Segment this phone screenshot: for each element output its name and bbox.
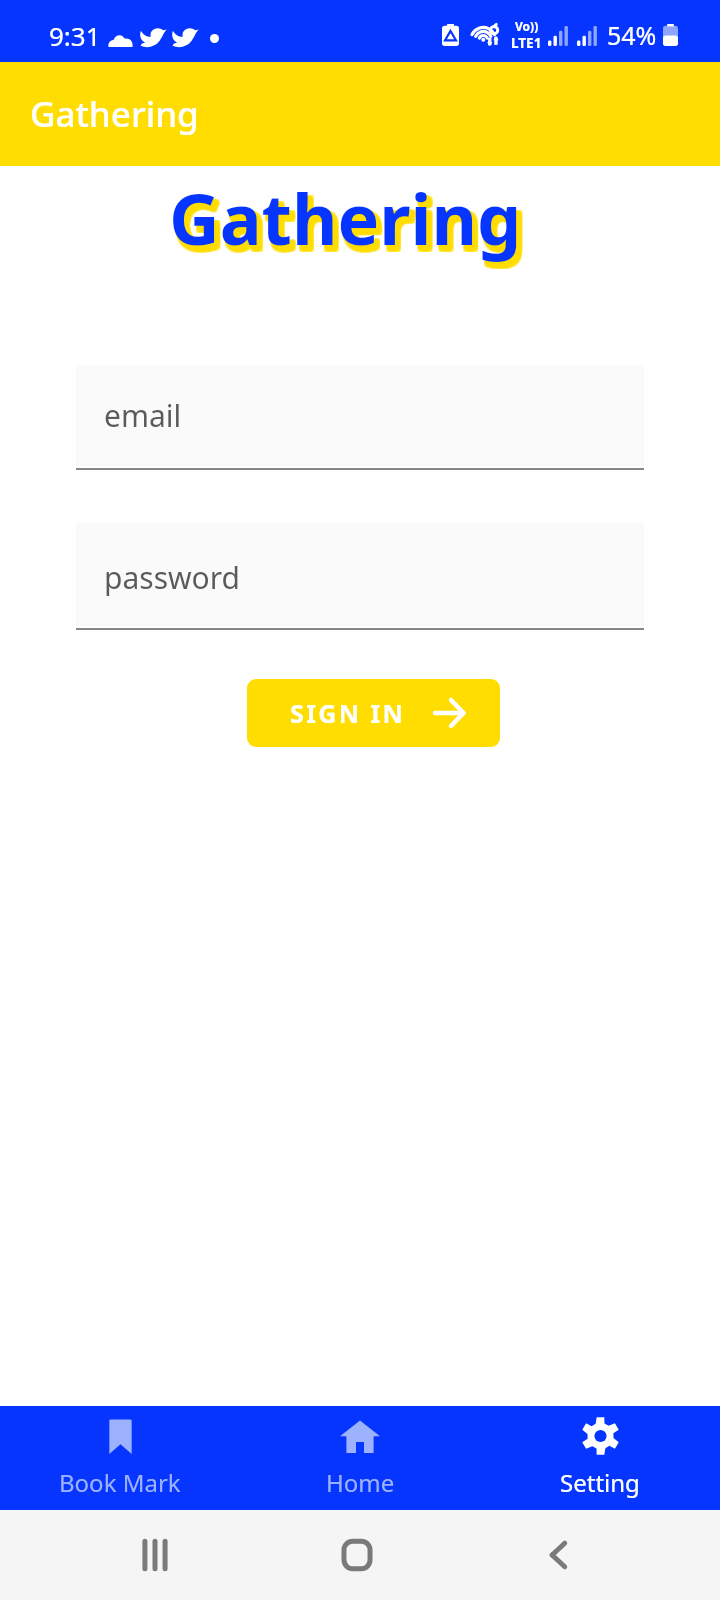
- staticText: Gathering: [171, 175, 524, 270]
- staticText: Gathering: [172, 175, 525, 270]
- staticText: Gathering: [171, 173, 524, 268]
- staticText: 54%: [607, 18, 657, 52]
- staticText: Gathering: [174, 177, 527, 272]
- button[interactable]: Book Mark: [0, 1406, 240, 1510]
- staticText: Gathering: [171, 177, 524, 272]
- button[interactable]: Back: [537, 1534, 579, 1576]
- staticText: Gathering: [172, 177, 525, 272]
- staticText: Gathering: [173, 175, 526, 270]
- staticText: Gathering: [171, 174, 524, 269]
- button[interactable]: Home: [240, 1406, 480, 1510]
- staticText: 9:31: [49, 18, 101, 53]
- staticText: Gathering: [175, 176, 528, 271]
- staticText: Gathering: [171, 176, 524, 271]
- button[interactable]: email: [76, 366, 644, 470]
- staticText: SIGN IN: [290, 696, 406, 730]
- staticText: Gathering: [172, 174, 525, 269]
- staticText: Gathering: [174, 176, 527, 271]
- staticText: Gathering: [173, 175, 526, 270]
- button[interactable]: Recent apps: [134, 1534, 176, 1576]
- staticText: Gathering: [175, 173, 528, 268]
- staticText: Gathering: [173, 174, 526, 269]
- staticText: Gathering: [173, 176, 526, 271]
- staticText: Home: [326, 1466, 395, 1499]
- staticText: Gathering: [174, 175, 527, 270]
- staticText: Setting: [560, 1466, 640, 1499]
- staticText: Gathering: [172, 176, 525, 271]
- staticText: LTE1: [511, 34, 542, 52]
- staticText: Gathering: [174, 173, 527, 268]
- button[interactable]: Setting: [480, 1406, 720, 1510]
- staticText: Gathering: [172, 173, 525, 268]
- staticText: password: [104, 557, 240, 598]
- staticText: Gathering: [175, 174, 528, 269]
- button[interactable]: password: [76, 522, 644, 630]
- staticText: Gathering: [173, 173, 526, 268]
- staticText: Gathering: [174, 174, 527, 269]
- staticText: Gathering: [175, 177, 528, 272]
- staticText: Gathering: [169, 170, 522, 265]
- staticText: Gathering: [173, 177, 526, 272]
- staticText: Gathering: [30, 90, 199, 138]
- staticText: email: [104, 395, 182, 436]
- staticText: Book Mark: [59, 1466, 181, 1499]
- staticText: Vo)): [515, 18, 539, 34]
- button[interactable]: SIGN IN: [247, 679, 500, 747]
- staticText: Gathering: [175, 175, 528, 270]
- button[interactable]: Home: [336, 1534, 378, 1576]
